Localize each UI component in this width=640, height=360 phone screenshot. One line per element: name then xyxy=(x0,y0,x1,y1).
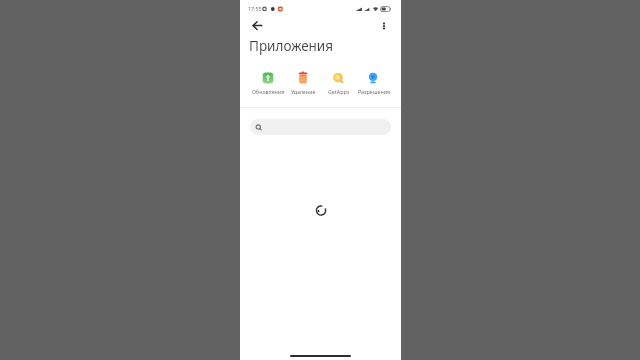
staticText: Удаление xyxy=(291,88,316,95)
staticText: GetApps xyxy=(328,88,350,95)
button[interactable] xyxy=(356,66,391,96)
button[interactable] xyxy=(321,66,356,96)
button[interactable] xyxy=(250,119,391,135)
staticText: Приложения xyxy=(249,37,334,55)
staticText: 17:55 xyxy=(248,5,262,12)
button[interactable] xyxy=(376,17,392,35)
staticText: Разрешения xyxy=(358,88,390,95)
button[interactable] xyxy=(251,66,286,96)
button[interactable] xyxy=(248,17,266,35)
button[interactable] xyxy=(286,66,321,96)
staticText: Обновления xyxy=(252,88,285,95)
